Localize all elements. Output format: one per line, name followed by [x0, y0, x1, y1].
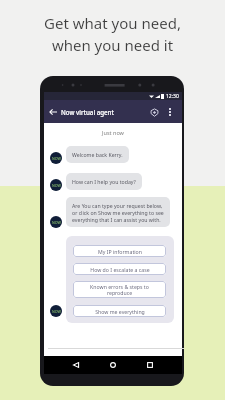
staticText: when you need it	[0, 35, 225, 55]
staticText: 12:30	[166, 93, 179, 100]
staticText: Are You can type your request below, or …	[72, 202, 164, 223]
staticText: Now virtual agent	[61, 108, 114, 116]
button[interactable]: Show me everything	[73, 305, 166, 317]
staticText: NOW	[52, 309, 61, 314]
button[interactable]: My IP information	[73, 245, 166, 257]
button[interactable]: Back	[47, 106, 59, 118]
staticText: How do I escalate a case	[90, 266, 150, 273]
button[interactable]: Back	[70, 359, 82, 371]
staticText: Get what you need,	[0, 13, 225, 33]
button[interactable]: Security	[148, 106, 160, 118]
staticText: Just now	[44, 129, 182, 136]
button[interactable]: Home	[107, 359, 119, 371]
staticText: How can I help you today?	[72, 178, 136, 185]
staticText: Show me everything	[95, 308, 145, 315]
staticText: Welcome back Kerry.	[72, 151, 123, 158]
staticText: My IP information	[98, 248, 142, 255]
staticText: Known errors & steps to reproduce	[90, 283, 149, 297]
staticText: NOW	[52, 156, 61, 161]
button[interactable]: Known errors & steps to reproduce	[73, 281, 166, 298]
button[interactable]: More options	[164, 106, 176, 118]
button[interactable]: How do I escalate a case	[73, 263, 166, 275]
staticText: NOW	[52, 183, 61, 188]
button[interactable]: Recents	[144, 359, 156, 371]
staticText: NOW	[52, 220, 61, 225]
